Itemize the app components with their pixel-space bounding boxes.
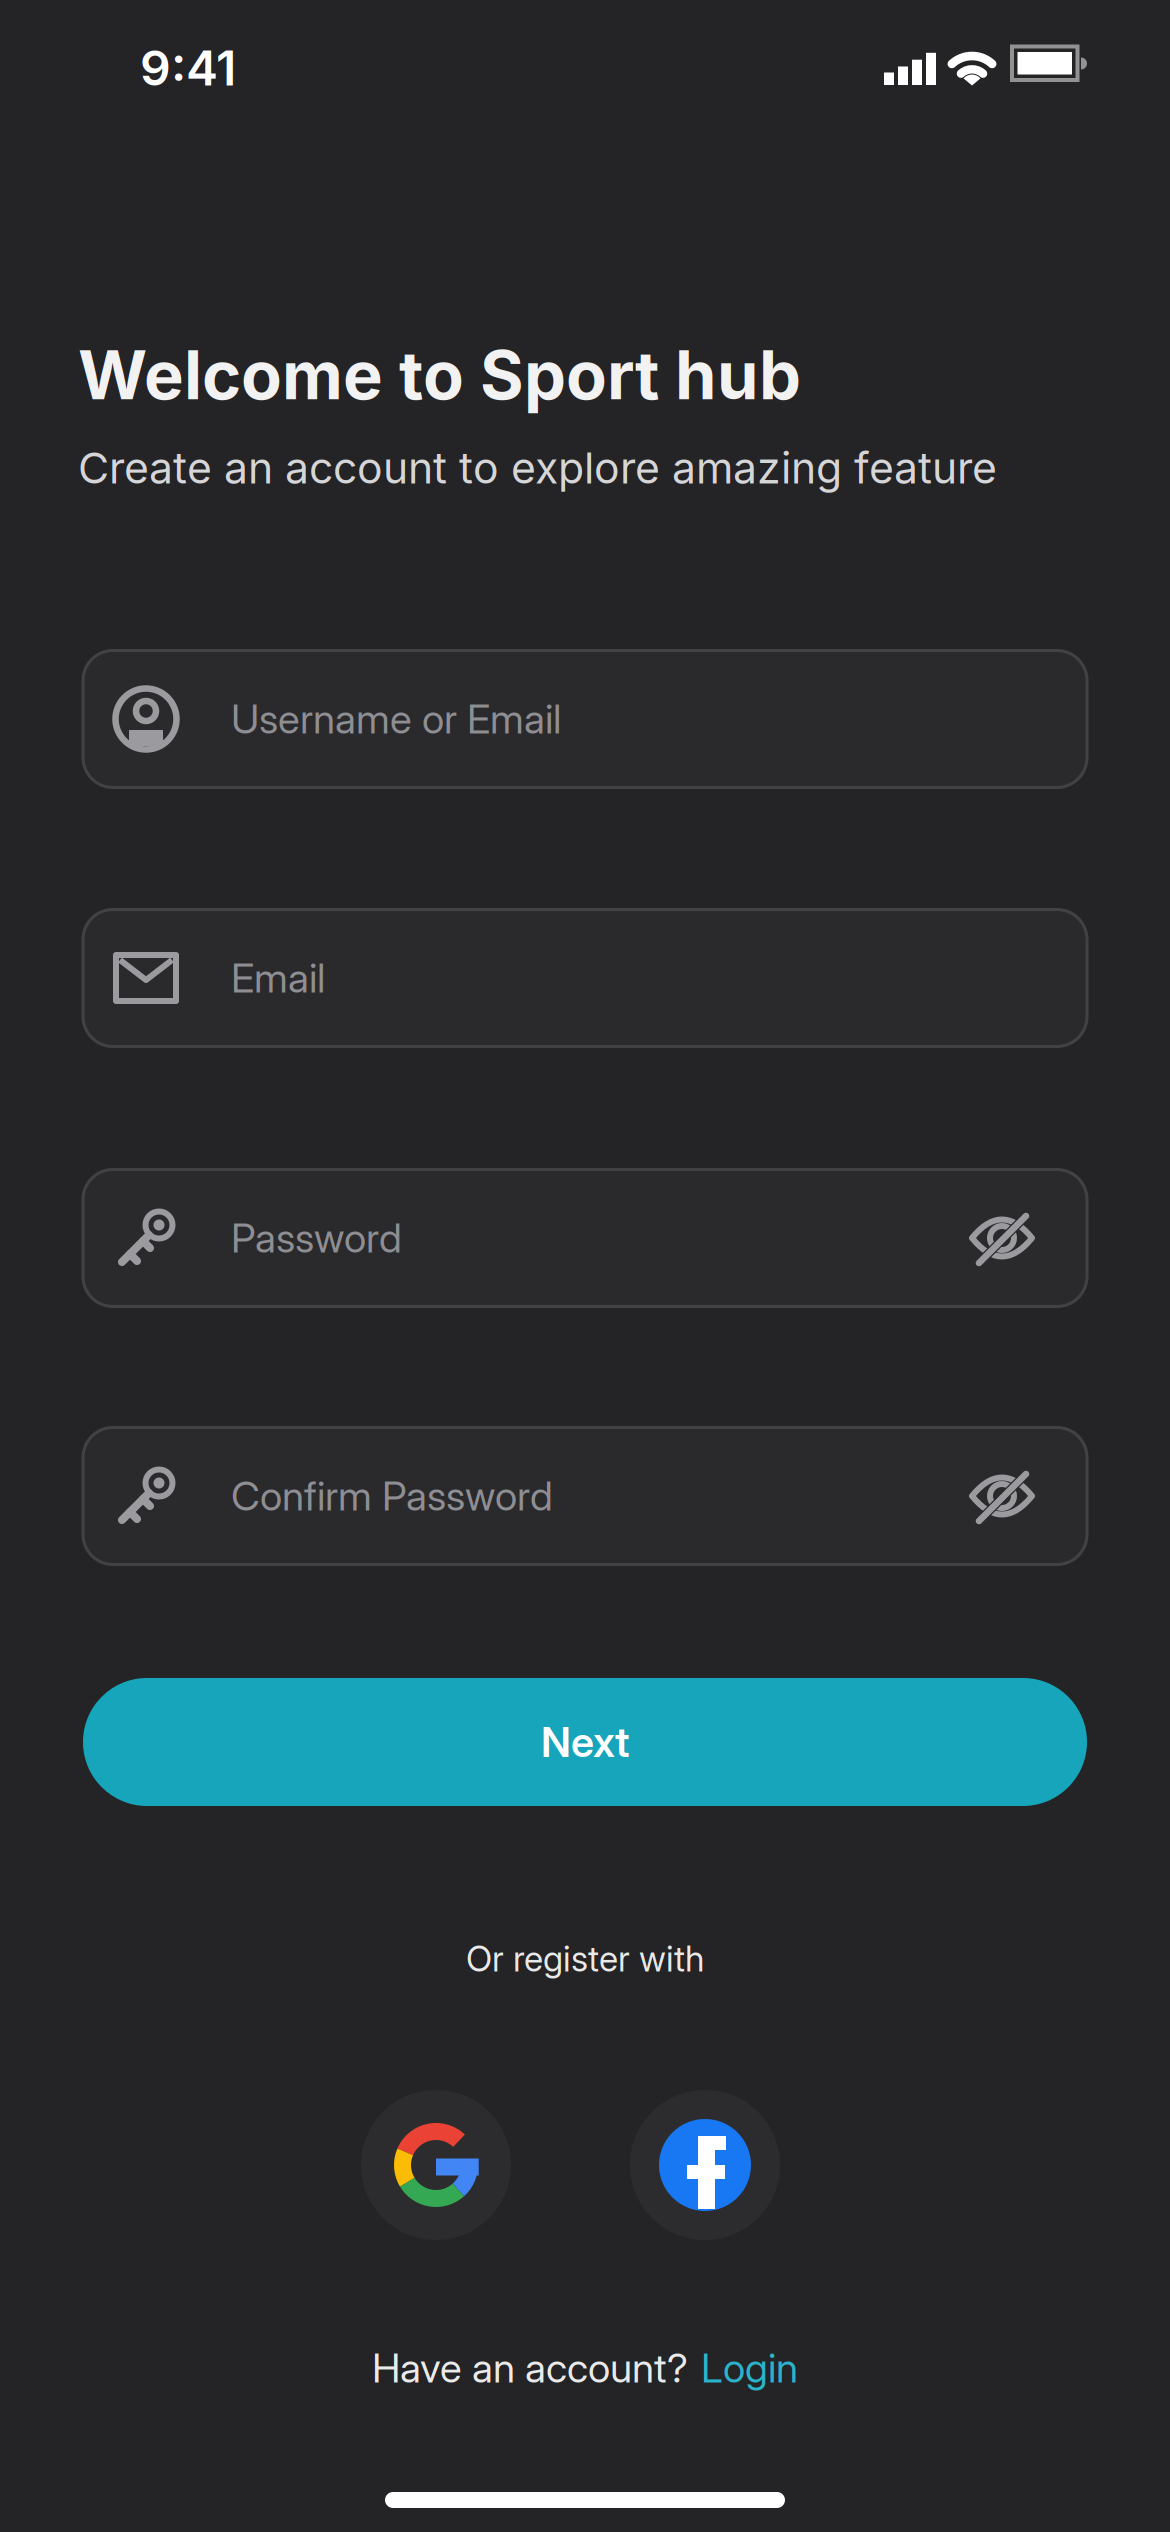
staticText: Password: [231, 1214, 402, 1262]
staticText: Username or Email: [231, 695, 561, 743]
staticText: Create an account to explore amazing fea…: [78, 443, 997, 493]
button[interactable]: [630, 2090, 780, 2240]
staticText: Welcome to Sport hub: [78, 336, 801, 414]
staticText: Next: [541, 1718, 629, 1766]
staticText: Or register with: [466, 1939, 704, 1979]
staticText: 9:41: [140, 40, 236, 96]
button[interactable]: Next: [83, 1678, 1087, 1806]
button[interactable]: Username or Email: [83, 650, 1087, 787]
button[interactable]: Password: [83, 1169, 1087, 1306]
staticText: Email: [231, 954, 325, 1002]
button[interactable]: Confirm Password: [83, 1427, 1087, 1564]
staticText: Confirm Password: [231, 1472, 553, 1520]
button[interactable]: Login: [701, 2344, 798, 2392]
button[interactable]: [361, 2090, 511, 2240]
staticText: Have an account?: [372, 2344, 688, 2392]
staticText: Login: [701, 2344, 798, 2392]
button[interactable]: Email: [83, 909, 1087, 1046]
